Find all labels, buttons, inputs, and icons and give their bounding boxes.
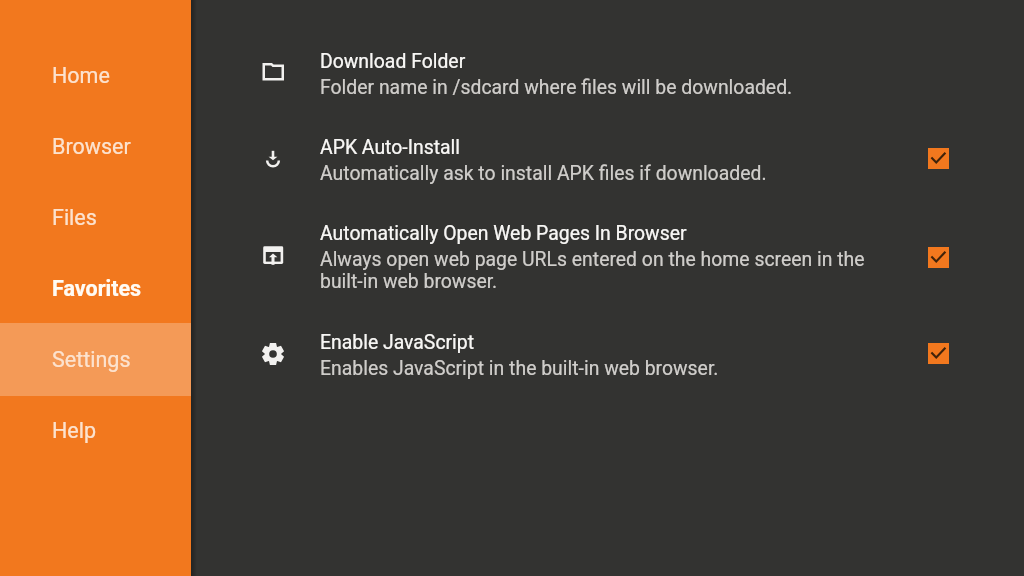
staticText: Settings	[52, 347, 131, 372]
staticText: Home	[52, 63, 110, 88]
button[interactable]: Toggle Automatically Open Web Pages In B…	[928, 247, 949, 268]
button[interactable]: Enable JavaScript	[0, 331, 1024, 383]
staticText: APK Auto-Install	[320, 136, 920, 159]
staticText: Automatically Open Web Pages In Browser	[320, 222, 920, 245]
button[interactable]: Home	[0, 39, 191, 112]
staticText: Browser	[52, 134, 131, 159]
staticText: Help	[52, 418, 97, 443]
staticText: Files	[52, 205, 97, 230]
staticText: Enable JavaScript	[320, 331, 920, 354]
staticText: Always open web page URLs entered on the…	[320, 248, 875, 293]
staticText: Enables JavaScript in the built-in web b…	[320, 357, 875, 380]
staticText: Favorites	[52, 276, 142, 301]
staticText: Folder name in /sdcard where files will …	[320, 76, 875, 99]
button[interactable]: Browser	[0, 110, 191, 183]
staticText: Download Folder	[320, 50, 920, 73]
button[interactable]: Help	[0, 394, 191, 467]
button[interactable]: Toggle APK Auto-Install	[928, 148, 949, 169]
button[interactable]: Settings	[0, 323, 191, 396]
button[interactable]: Favorites	[0, 252, 191, 325]
staticText: Automatically ask to install APK files i…	[320, 162, 875, 185]
button[interactable]: Files	[0, 181, 191, 254]
button[interactable]: Automatically Open Web Pages In Browser	[0, 222, 1024, 300]
button[interactable]: Download Folder	[0, 50, 1024, 102]
button[interactable]: APK Auto-Install	[0, 136, 1024, 188]
button[interactable]: Toggle Enable JavaScript	[928, 343, 949, 364]
